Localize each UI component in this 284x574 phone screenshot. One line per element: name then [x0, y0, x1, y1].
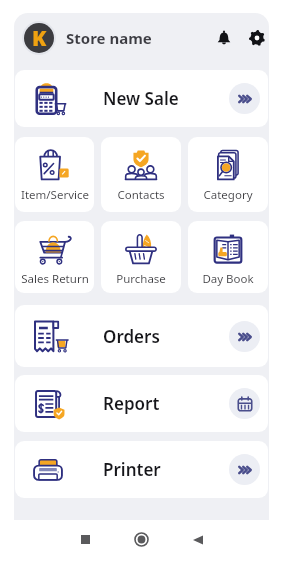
staticText: New Sale: [103, 87, 179, 110]
staticText: Sales Return: [21, 271, 89, 287]
button[interactable]: Sales Return: [15, 221, 94, 293]
button[interactable]: New Sale: [15, 70, 268, 127]
staticText: Printer: [103, 458, 161, 481]
staticText: Day Book: [202, 271, 254, 287]
button[interactable]: Contacts: [101, 137, 181, 212]
staticText: Category: [203, 187, 253, 203]
button[interactable]: Printer: [15, 441, 268, 498]
button[interactable]: Back: [183, 525, 212, 554]
button[interactable]: Category: [188, 137, 268, 212]
button[interactable]: Home: [127, 525, 156, 554]
button[interactable]: Orders: [15, 305, 268, 367]
staticText: Item/Service: [21, 187, 89, 203]
button[interactable]: Report: [15, 375, 268, 432]
button[interactable]: Settings: [246, 27, 268, 49]
button[interactable]: Day Book: [188, 221, 268, 293]
button[interactable]: Item/Service: [15, 137, 94, 212]
staticText: Contacts: [117, 187, 165, 203]
staticText: Purchase: [116, 271, 166, 287]
staticText: Report: [103, 392, 160, 415]
staticText: K: [32, 24, 47, 53]
button[interactable]: Recents: [71, 525, 100, 554]
button[interactable]: Purchase: [101, 221, 181, 293]
staticText: Orders: [103, 325, 160, 348]
staticText: Store name: [66, 28, 152, 48]
button[interactable]: Notifications: [213, 27, 235, 49]
